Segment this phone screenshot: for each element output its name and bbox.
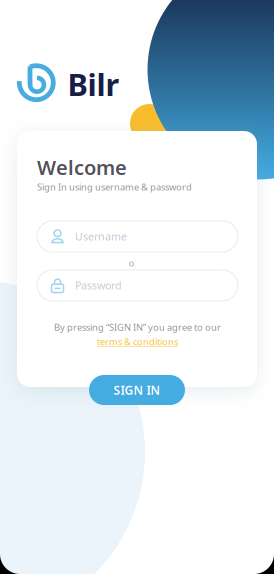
staticText: SIGN IN	[113, 382, 160, 398]
button[interactable]: Password	[37, 270, 238, 301]
staticText: Sign In using username & password	[37, 181, 192, 193]
staticText: By pressing “SIGN IN” you agree to our	[54, 321, 221, 333]
staticText: Password	[75, 278, 122, 293]
button[interactable]: Username	[37, 221, 238, 252]
button[interactable]: SIGN IN	[89, 375, 185, 405]
staticText: Username	[75, 229, 127, 244]
staticText: Welcome	[37, 154, 127, 181]
button[interactable]: terms & conditions	[97, 335, 178, 348]
staticText: terms & conditions	[97, 335, 178, 348]
staticText: Bilr	[67, 64, 119, 104]
